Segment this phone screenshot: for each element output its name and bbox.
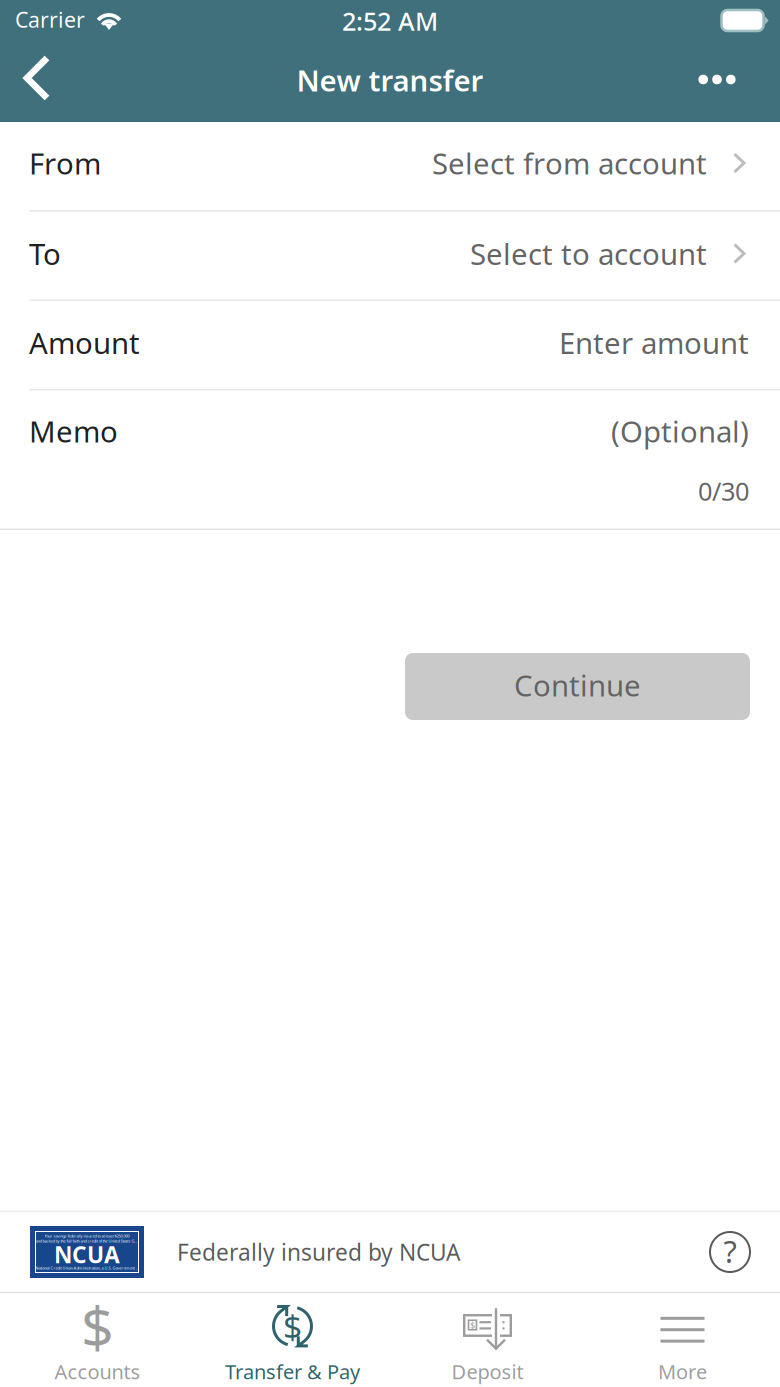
staticText: Accounts [54, 1358, 140, 1385]
staticText: More [658, 1358, 707, 1385]
staticText: ? [723, 1231, 736, 1271]
button[interactable]: Amount [0, 301, 780, 390]
staticText: Memo [29, 411, 118, 450]
staticText: Your savings federally insured to at lea… [44, 1233, 129, 1239]
staticText: Select to account [470, 234, 707, 273]
staticText: Select from account [432, 143, 707, 182]
staticText: Deposit [451, 1358, 523, 1385]
staticText: $ [283, 1304, 302, 1348]
staticText: From [29, 143, 101, 182]
staticText: Enter amount [559, 323, 749, 362]
button[interactable]: More [585, 1293, 780, 1387]
staticText: New transfer [296, 60, 483, 99]
button[interactable]: Continue [405, 653, 750, 720]
button[interactable]: From [0, 122, 780, 211]
staticText: $ [470, 1319, 475, 1331]
staticText: 0/30 [698, 474, 749, 508]
button[interactable]: More options [688, 56, 746, 103]
staticText: To [29, 234, 61, 273]
button[interactable]: $ [390, 1293, 585, 1387]
button[interactable]: Back [20, 56, 71, 103]
staticText: 2:52 AM [342, 4, 438, 38]
button[interactable]: Help [710, 1232, 750, 1272]
staticText: National Credit Union Administration, a … [35, 1265, 138, 1271]
staticText: Federally insured by NCUA [177, 1237, 460, 1267]
button[interactable]: $ [195, 1293, 390, 1387]
button[interactable]: $ [0, 1293, 195, 1387]
staticText: Continue [514, 665, 641, 704]
button[interactable]: To [0, 211, 780, 301]
staticText: (Optional) [611, 411, 749, 450]
staticText: Carrier [15, 5, 85, 34]
staticText: and backed by the full faith and credit … [35, 1238, 138, 1244]
staticText: $ [81, 1288, 114, 1364]
staticText: Transfer & Pay [225, 1358, 360, 1385]
staticText: Amount [29, 323, 140, 362]
staticText: NCUA [54, 1239, 120, 1269]
button[interactable]: Memo [0, 390, 780, 530]
